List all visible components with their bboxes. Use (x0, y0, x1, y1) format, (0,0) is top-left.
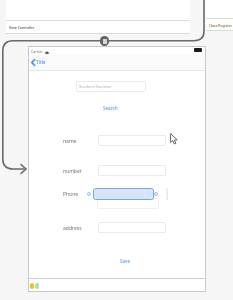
staticText: Save (120, 258, 131, 264)
button[interactable] (98, 135, 166, 146)
staticText: Title (36, 59, 46, 66)
staticText: Carrier (31, 49, 43, 54)
staticText: View Controller (9, 25, 35, 30)
staticText: number (63, 168, 82, 175)
button[interactable] (98, 165, 166, 176)
button[interactable]: Student Number (76, 81, 146, 92)
button[interactable] (98, 222, 166, 233)
button[interactable]: Title (31, 56, 46, 69)
button[interactable]: Save (114, 255, 136, 267)
staticText: Class Register (209, 23, 233, 28)
button[interactable]: Search (99, 102, 121, 114)
staticText: address (63, 225, 82, 232)
button[interactable]: Segue (100, 36, 109, 46)
staticText: Phone (63, 191, 79, 198)
button[interactable] (93, 188, 154, 200)
staticText: name (63, 138, 77, 145)
staticText: Search (103, 105, 118, 111)
staticText: Student Number (79, 84, 112, 90)
